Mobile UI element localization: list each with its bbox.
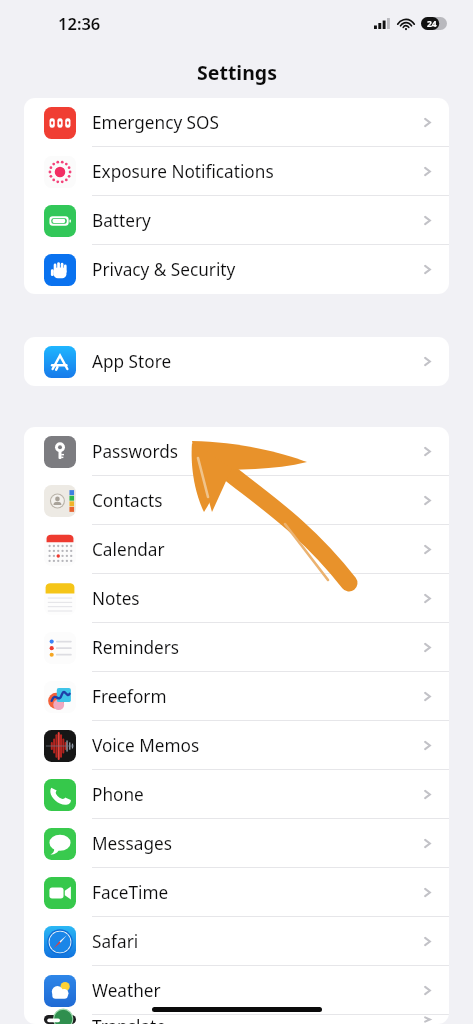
button[interactable]: Weather bbox=[24, 966, 449, 1015]
staticText: Notes bbox=[92, 587, 140, 610]
button[interactable]: Exposure Notifications bbox=[24, 147, 449, 196]
staticText: Emergency SOS bbox=[92, 111, 219, 134]
staticText: Safari bbox=[92, 930, 139, 953]
staticText: Battery bbox=[92, 209, 151, 232]
button[interactable]: Reminders bbox=[24, 623, 449, 672]
button[interactable]: Calendar bbox=[24, 525, 449, 574]
staticText: Messages bbox=[92, 832, 172, 855]
staticText: Contacts bbox=[92, 489, 163, 512]
other: Home indicator bbox=[152, 1007, 322, 1012]
staticText: Privacy & Security bbox=[92, 258, 236, 281]
staticText: 12:36 bbox=[58, 12, 101, 34]
button[interactable]: FaceTime bbox=[24, 868, 449, 917]
staticText: 24 bbox=[427, 18, 437, 30]
button[interactable]: Emergency SOS bbox=[24, 98, 449, 147]
staticText: Translate bbox=[92, 1015, 166, 1024]
staticText: Passwords bbox=[92, 440, 178, 463]
staticText: Reminders bbox=[92, 636, 180, 659]
button[interactable]: Contacts bbox=[24, 476, 449, 525]
staticText: Exposure Notifications bbox=[92, 160, 274, 183]
button[interactable]: Messages bbox=[24, 819, 449, 868]
button[interactable]: Notes bbox=[24, 574, 449, 623]
staticText: Settings bbox=[197, 59, 277, 86]
button[interactable]: Privacy & Security bbox=[24, 245, 449, 294]
button[interactable]: App Store bbox=[24, 337, 449, 386]
staticText: FaceTime bbox=[92, 881, 169, 904]
button[interactable]: Phone bbox=[24, 770, 449, 819]
staticText: App Store bbox=[92, 350, 172, 373]
staticText: Weather bbox=[92, 979, 161, 1002]
staticText: Phone bbox=[92, 783, 144, 806]
button[interactable]: Passwords bbox=[24, 427, 449, 476]
button[interactable]: Voice Memos bbox=[24, 721, 449, 770]
staticText: Voice Memos bbox=[92, 734, 200, 757]
button[interactable]: Translate bbox=[24, 1015, 449, 1024]
button[interactable]: Battery bbox=[24, 196, 449, 245]
button[interactable]: Freeform bbox=[24, 672, 449, 721]
button[interactable]: Safari bbox=[24, 917, 449, 966]
staticText: Freeform bbox=[92, 685, 167, 708]
staticText: Calendar bbox=[92, 538, 165, 561]
